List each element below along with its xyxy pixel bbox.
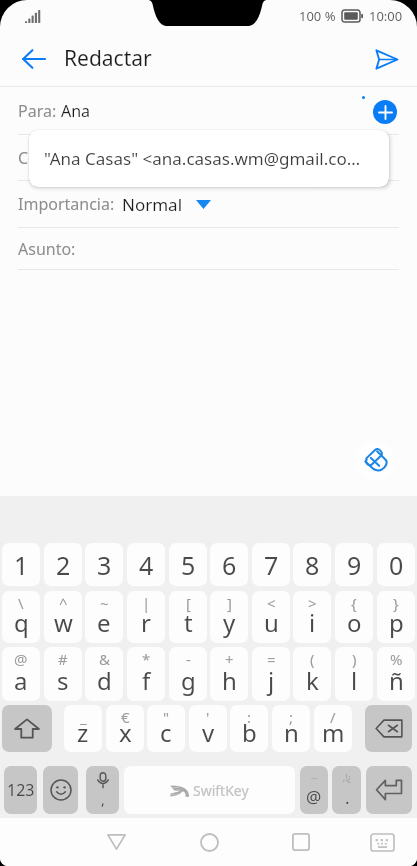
staticText: ··· bbox=[311, 773, 318, 784]
staticText: j bbox=[268, 664, 275, 697]
button[interactable]: Arroba bbox=[300, 766, 328, 814]
staticText: € bbox=[121, 707, 130, 727]
button[interactable]: 9 bbox=[335, 543, 373, 586]
staticText: @ bbox=[306, 785, 322, 808]
button[interactable]: 4 bbox=[127, 543, 165, 586]
button[interactable]: * bbox=[127, 647, 165, 701]
staticText: < bbox=[267, 593, 276, 613]
staticText: @ bbox=[14, 649, 28, 669]
staticText: ; bbox=[289, 707, 294, 727]
staticText: ' bbox=[206, 707, 210, 727]
button[interactable]: 3 bbox=[85, 543, 123, 586]
staticText: 123 bbox=[7, 779, 35, 801]
button[interactable]: ( bbox=[293, 647, 331, 701]
button[interactable]: ' bbox=[189, 705, 227, 752]
staticText: > bbox=[308, 593, 317, 613]
staticText: o bbox=[347, 606, 362, 639]
staticText: x bbox=[119, 716, 132, 749]
staticText: " bbox=[163, 707, 170, 727]
button[interactable]: Mayúsculas bbox=[2, 705, 52, 752]
staticText: m bbox=[322, 716, 345, 749]
button[interactable]: Intro bbox=[366, 766, 412, 814]
staticText: Normal bbox=[122, 193, 183, 216]
button[interactable]: 5 bbox=[169, 543, 207, 586]
staticText: = bbox=[267, 649, 276, 669]
button[interactable]: Enviar bbox=[363, 36, 409, 82]
button[interactable]: Inicio bbox=[185, 818, 233, 866]
staticText: y bbox=[223, 606, 236, 639]
button[interactable]: 0 bbox=[377, 543, 415, 586]
button[interactable]: 2 bbox=[44, 543, 82, 586]
button[interactable]: / bbox=[314, 705, 352, 752]
staticText: r bbox=[141, 606, 151, 639]
staticText: v bbox=[202, 716, 215, 749]
button[interactable]: ^ bbox=[44, 591, 82, 643]
button[interactable]: Números bbox=[4, 766, 37, 814]
staticText: 0 bbox=[389, 548, 404, 582]
button[interactable]: 8 bbox=[293, 543, 331, 586]
staticText: % bbox=[390, 649, 403, 669]
button[interactable]: + bbox=[210, 647, 248, 701]
staticText: 2 bbox=[56, 548, 71, 582]
staticText: ^ bbox=[59, 593, 68, 613]
staticText: | bbox=[142, 593, 151, 613]
button[interactable]: \ bbox=[2, 591, 40, 643]
staticText: g bbox=[181, 664, 196, 697]
staticText: w bbox=[54, 606, 73, 639]
button[interactable]: Punto bbox=[332, 766, 361, 814]
button[interactable]: _ bbox=[64, 705, 102, 752]
button[interactable]: > bbox=[293, 591, 331, 643]
button[interactable]: | bbox=[127, 591, 165, 643]
staticText: + bbox=[225, 649, 234, 669]
button[interactable]: { bbox=[335, 591, 373, 643]
button[interactable]: Emoji bbox=[43, 766, 78, 814]
staticText: 6 bbox=[222, 548, 237, 582]
button[interactable]: Agregar contacto bbox=[373, 100, 397, 124]
button[interactable]: " bbox=[147, 705, 185, 752]
staticText: # bbox=[58, 649, 68, 669]
button[interactable]: & bbox=[85, 647, 123, 701]
button[interactable]: Borrar bbox=[365, 705, 412, 752]
staticText: Redactar bbox=[64, 44, 152, 73]
staticText: \ bbox=[18, 593, 24, 613]
button[interactable]: : bbox=[230, 705, 268, 752]
staticText: c bbox=[160, 716, 172, 749]
button[interactable]: Espacio bbox=[124, 766, 295, 814]
button[interactable]: Adjuntar archivo bbox=[355, 441, 395, 481]
button[interactable]: 6 bbox=[210, 543, 248, 586]
staticText: s bbox=[57, 664, 69, 697]
button[interactable]: # bbox=[44, 647, 82, 701]
button[interactable]: Normal bbox=[122, 193, 211, 216]
button[interactable]: < bbox=[252, 591, 290, 643]
button[interactable]: - bbox=[169, 647, 207, 701]
staticText: Asunto: bbox=[18, 238, 76, 260]
button[interactable]: = bbox=[252, 647, 290, 701]
staticText: & bbox=[99, 649, 110, 669]
button[interactable]: % bbox=[377, 647, 415, 701]
button[interactable]: ~ bbox=[85, 591, 123, 643]
staticText: "Ana Casas" <ana.casas.wm@gmail.co… bbox=[44, 147, 361, 170]
staticText: ñ bbox=[389, 664, 404, 697]
button[interactable]: [ bbox=[169, 591, 207, 643]
button[interactable]: Atrás bbox=[10, 36, 56, 82]
button[interactable]: Recientes bbox=[277, 818, 325, 866]
button[interactable]: ; bbox=[272, 705, 310, 752]
staticText: 4 bbox=[139, 548, 154, 582]
button[interactable]: } bbox=[377, 591, 415, 643]
button[interactable]: 1 bbox=[2, 543, 40, 586]
staticText: d bbox=[97, 664, 112, 697]
button[interactable]: ] bbox=[210, 591, 248, 643]
staticText: _ bbox=[80, 707, 87, 727]
staticText: e bbox=[97, 606, 111, 639]
button[interactable]: Voz bbox=[86, 766, 119, 814]
button[interactable]: "Ana Casas" <ana.casas.wm@gmail.co… bbox=[29, 130, 389, 187]
staticText: Ana bbox=[61, 100, 91, 122]
button[interactable]: Ocultar teclado bbox=[358, 818, 406, 866]
button[interactable]: ) bbox=[335, 647, 373, 701]
staticText: Para: bbox=[18, 100, 61, 122]
button[interactable]: € bbox=[106, 705, 144, 752]
button[interactable]: 7 bbox=[252, 543, 290, 586]
button[interactable]: Atrás bbox=[92, 818, 140, 866]
button[interactable]: @ bbox=[2, 647, 40, 701]
staticText: . bbox=[345, 786, 350, 809]
